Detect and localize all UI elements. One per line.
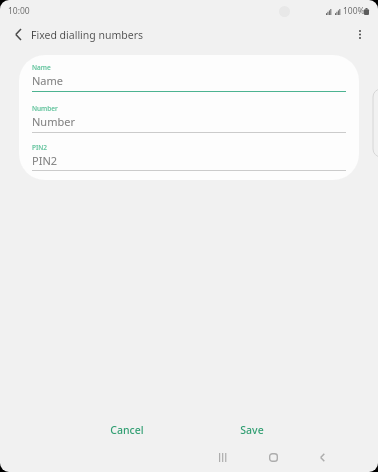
staticText: Number — [32, 104, 58, 113]
button[interactable]: Navigate up — [5, 22, 30, 47]
button[interactable]: Save — [196, 414, 307, 446]
staticText: Name — [32, 73, 64, 88]
button[interactable]: Recent apps — [203, 444, 243, 470]
staticText: Save — [240, 423, 264, 437]
staticText: Fixed dialling numbers — [31, 28, 144, 42]
staticText: PIN2 — [32, 143, 48, 152]
button[interactable]: Cancel — [71, 414, 182, 446]
button[interactable]: Home — [253, 444, 293, 470]
staticText: 10:00 — [8, 5, 30, 17]
staticText: PIN2 — [32, 153, 58, 168]
button[interactable] — [32, 59, 346, 95]
button[interactable] — [32, 100, 346, 136]
staticText: 100% — [343, 5, 365, 17]
button[interactable] — [32, 139, 346, 174]
button[interactable]: Back — [302, 444, 342, 470]
staticText: Name — [32, 63, 51, 72]
staticText: Number — [32, 114, 75, 129]
button[interactable]: More options — [348, 22, 372, 46]
staticText: Cancel — [110, 423, 144, 437]
